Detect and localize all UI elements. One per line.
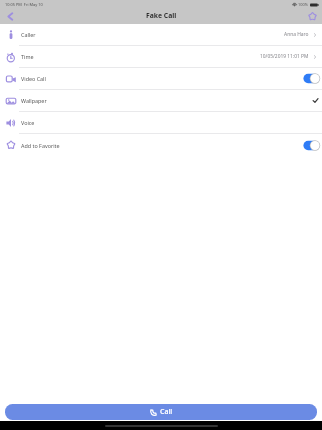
button[interactable]: Caller	[0, 24, 322, 45]
staticText: Call	[160, 407, 173, 417]
staticText: Voice	[21, 119, 35, 126]
button[interactable]: Call	[5, 404, 317, 420]
button[interactable]: Add to Favorite	[0, 134, 322, 156]
button[interactable]: Add to Favorite	[303, 140, 320, 151]
staticText: Wallpaper	[21, 97, 47, 104]
staticText: Video Call	[21, 75, 46, 82]
staticText: Time	[21, 53, 34, 60]
button[interactable]: Video Call	[303, 73, 320, 84]
button[interactable]: Time	[0, 46, 322, 67]
button[interactable]: Favorite	[306, 10, 319, 23]
button[interactable]: Voice	[0, 112, 322, 133]
staticText: Anna Haro	[284, 31, 309, 38]
button[interactable]: Video Call	[0, 68, 322, 89]
button[interactable]: Back	[4, 10, 17, 23]
staticText: Add to Favorite	[21, 142, 60, 149]
staticText: 100%	[298, 2, 308, 7]
staticText: 10/05/2019 11:01 PM	[260, 53, 309, 60]
staticText: 10:05 PM Fri May 10	[5, 2, 43, 7]
button[interactable]: Wallpaper	[0, 90, 322, 111]
staticText: Fake Call	[146, 11, 177, 20]
staticText: Caller	[21, 31, 36, 38]
